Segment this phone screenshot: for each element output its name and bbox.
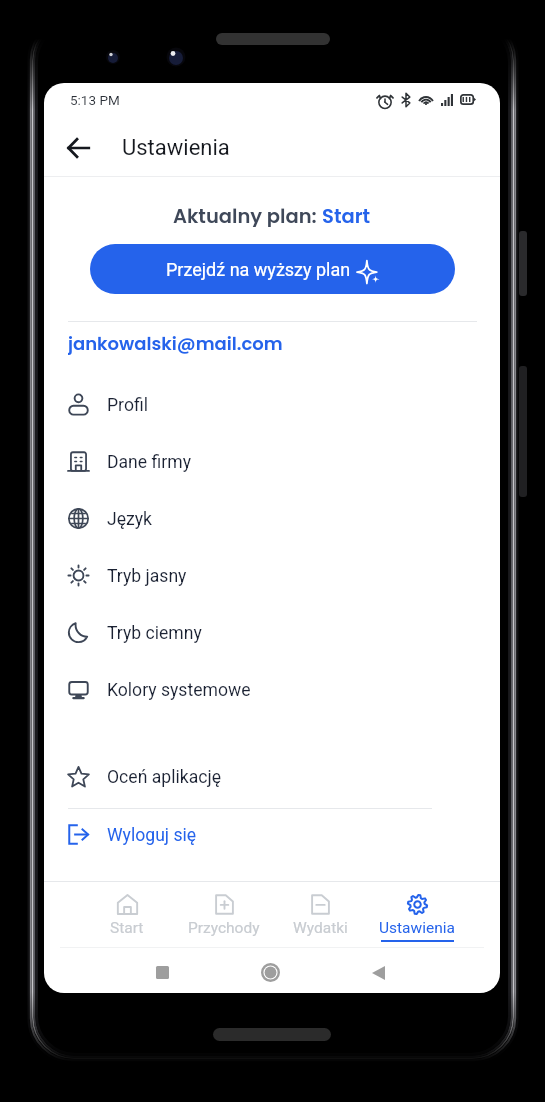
staticText: Start <box>322 203 371 227</box>
staticText: 5:13 PM <box>70 92 120 108</box>
button[interactable]: Wydatki <box>263 882 377 946</box>
button[interactable]: Kolory systemowe <box>44 662 500 719</box>
button[interactable]: Przychody <box>167 882 281 946</box>
button[interactable]: Dane firmy <box>44 434 500 491</box>
staticText: Wydatki <box>293 919 348 937</box>
staticText: Start <box>110 919 144 937</box>
button[interactable]: Back <box>372 965 385 980</box>
button[interactable]: Recent apps <box>156 966 169 979</box>
staticText: Przychody <box>188 919 260 937</box>
staticText: Profil <box>107 395 148 416</box>
staticText: Przejdź na wyższy plan <box>166 259 351 280</box>
button[interactable]: Start <box>70 882 184 946</box>
staticText: Tryb ciemny <box>107 623 202 644</box>
staticText: Dane firmy <box>107 452 191 473</box>
staticText: Język <box>107 509 153 530</box>
staticText: Ustawienia <box>379 919 455 937</box>
staticText: Wyloguj się <box>107 825 197 846</box>
button[interactable]: Przejdź na wyższy plan <box>90 244 455 294</box>
staticText: Tryb jasny <box>107 566 187 587</box>
staticText: Ustawienia <box>122 135 230 161</box>
staticText: Oceń aplikację <box>107 767 221 788</box>
staticText: jankowalski@mail.com <box>68 331 283 355</box>
button[interactable]: Tryb jasny <box>44 548 500 605</box>
staticText: Kolory systemowe <box>107 680 251 701</box>
button[interactable]: Wyloguj się <box>44 807 500 864</box>
button[interactable]: Oceń aplikację <box>44 749 500 806</box>
button[interactable]: Profil <box>44 377 500 434</box>
button[interactable]: Home <box>261 963 280 982</box>
staticText: Aktualny plan: <box>173 203 322 227</box>
button[interactable]: Tryb ciemny <box>44 605 500 662</box>
button[interactable]: Język <box>44 491 500 548</box>
button[interactable]: Back <box>56 126 100 170</box>
button[interactable]: Ustawienia <box>360 882 474 946</box>
